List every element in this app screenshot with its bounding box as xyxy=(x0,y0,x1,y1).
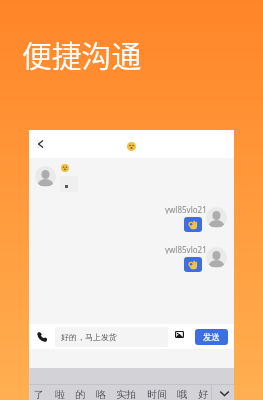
button[interactable]: 咯 xyxy=(96,388,106,400)
button[interactable]: 了 xyxy=(34,388,44,400)
button[interactable]: 的 xyxy=(75,388,85,400)
button[interactable]: Send image xyxy=(172,327,186,341)
staticText: 咯 xyxy=(96,388,106,400)
staticText: 的 xyxy=(75,388,85,400)
staticText: 哦 xyxy=(177,388,187,400)
staticText: 便捷沟通 xyxy=(22,32,142,75)
staticText: ywl85vlo21 xyxy=(165,204,207,214)
staticText: 好 xyxy=(198,388,208,400)
button[interactable]: 好 xyxy=(198,388,208,400)
staticText: ywl85vlo21 xyxy=(165,244,207,254)
button[interactable]: ywl85vlo21 xyxy=(137,244,207,254)
button[interactable]: Back xyxy=(31,134,51,154)
staticText: 时间 xyxy=(147,388,167,400)
button[interactable]: 好的，马上发货 xyxy=(55,327,168,347)
staticText: 实拍 xyxy=(116,388,136,400)
button[interactable] xyxy=(184,217,202,232)
button[interactable] xyxy=(60,176,78,192)
button[interactable]: 实拍 xyxy=(116,388,136,400)
button[interactable]: Voice call xyxy=(34,328,50,344)
button[interactable]: 啦 xyxy=(55,388,65,400)
staticText: 啦 xyxy=(55,388,65,400)
button[interactable]: ywl85vlo21 xyxy=(137,204,207,214)
button[interactable]: 哦 xyxy=(177,388,187,400)
staticText: 好的，马上发货 xyxy=(61,332,117,342)
button[interactable] xyxy=(184,257,202,272)
staticText: 发送 xyxy=(203,332,220,343)
button[interactable]: Collapse keyboard xyxy=(215,386,234,400)
staticText: 了 xyxy=(34,388,44,400)
button[interactable]: 发送 xyxy=(195,329,228,345)
button[interactable]: 时间 xyxy=(147,388,167,400)
